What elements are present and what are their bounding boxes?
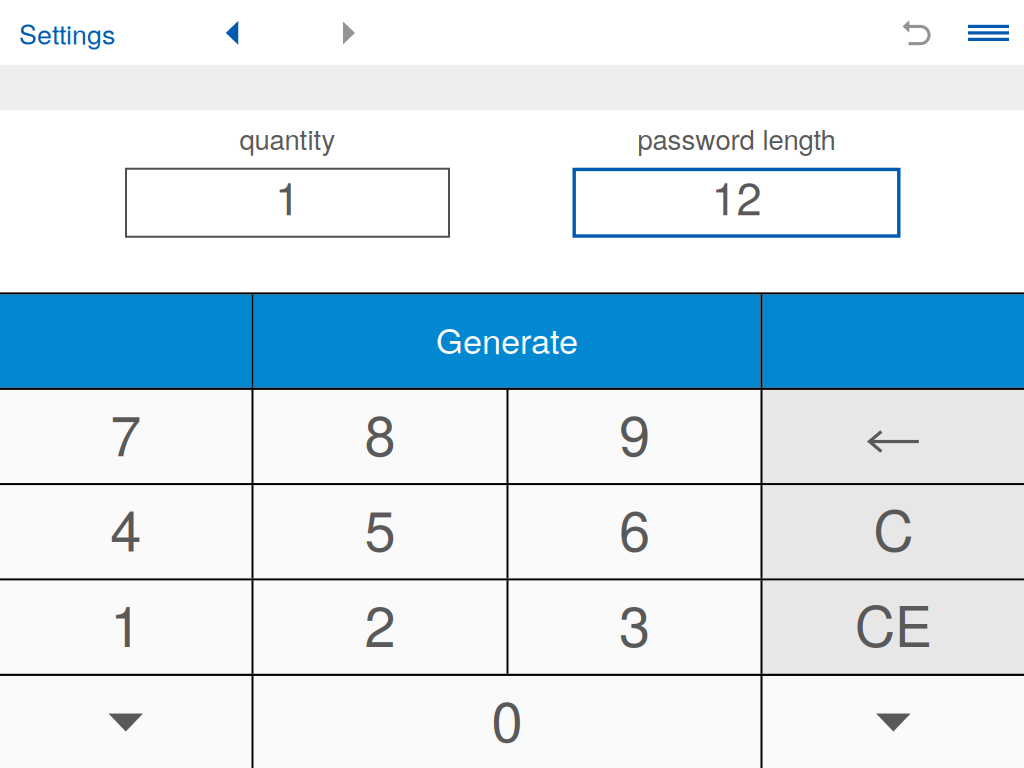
button[interactable]: 8 (254, 390, 506, 483)
staticText: 4 (110, 487, 141, 567)
staticText: CE (855, 583, 932, 663)
staticText: 3 (619, 583, 650, 663)
staticText: 5 (365, 487, 396, 567)
staticText: 2 (365, 583, 396, 663)
button[interactable]: Next field (326, 0, 372, 66)
button[interactable]: C (763, 485, 1024, 578)
button[interactable]: Menu (962, 0, 1015, 66)
staticText: quantity (239, 118, 335, 158)
staticText: 1 (275, 163, 300, 228)
button[interactable]: Undo (891, 0, 939, 66)
button[interactable]: Previous field (209, 0, 255, 66)
staticText: 9 (619, 392, 650, 472)
staticText: 6 (619, 487, 650, 567)
button[interactable]: 7 (0, 390, 251, 483)
button[interactable]: Decrease quantity (0, 676, 251, 768)
staticText: password length (637, 118, 835, 158)
button[interactable]: Options (0, 295, 251, 388)
button[interactable]: Generate (254, 295, 760, 388)
button[interactable]: 4 (0, 485, 251, 578)
button[interactable]: 2 (254, 581, 506, 674)
staticText: C (873, 487, 913, 567)
button[interactable]: 6 (509, 485, 760, 578)
staticText: 1 (110, 583, 141, 663)
button[interactable]: CE (763, 581, 1024, 674)
button[interactable]: Backspace (763, 390, 1024, 483)
staticText: 0 (492, 678, 523, 758)
staticText: Generate (436, 315, 578, 364)
button[interactable]: Settings (0, 0, 125, 66)
button[interactable]: 5 (254, 485, 506, 578)
button[interactable]: 12 (572, 168, 900, 238)
button[interactable]: 1 (0, 581, 251, 674)
button[interactable]: Copy (763, 295, 1024, 388)
staticText: 12 (711, 163, 761, 228)
button[interactable]: 1 (125, 168, 450, 238)
button[interactable]: 9 (509, 390, 760, 483)
button[interactable]: Decrease length (763, 676, 1024, 768)
button[interactable]: 3 (509, 581, 760, 674)
staticText: Settings (19, 14, 115, 52)
staticText: 8 (365, 392, 396, 472)
button[interactable]: 0 (254, 676, 760, 768)
staticText: 7 (110, 392, 141, 472)
